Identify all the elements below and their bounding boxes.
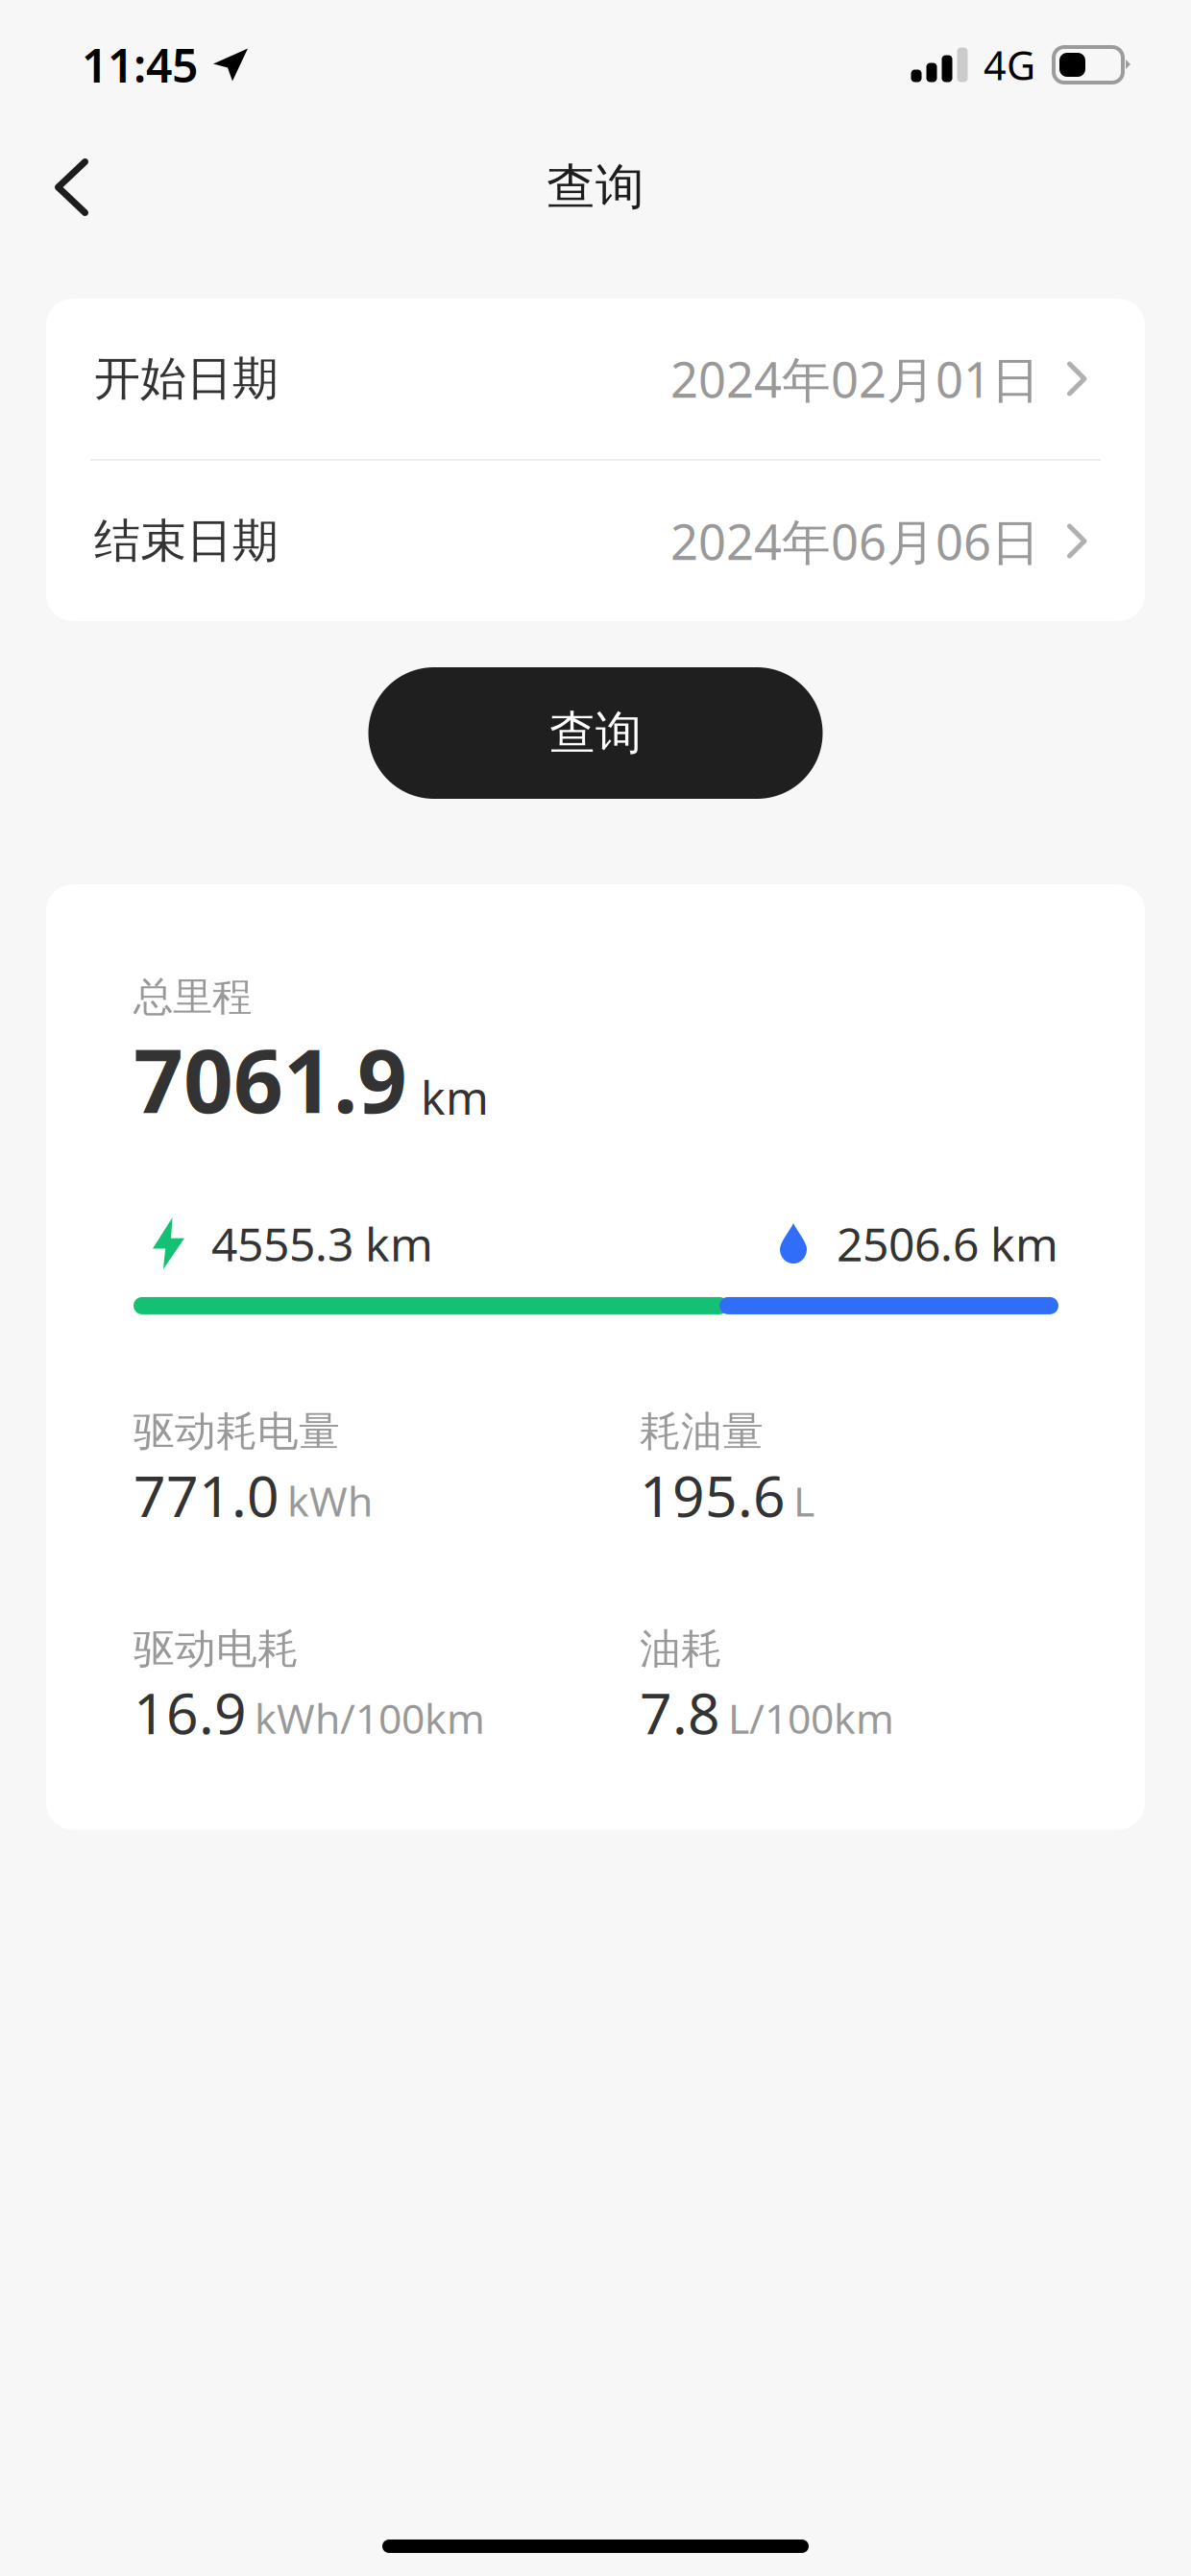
button[interactable]: 开始日期 [46,299,1145,459]
staticText: 结束日期 [94,513,279,569]
button[interactable]: 结束日期 [46,461,1145,621]
staticText: km [421,1066,489,1127]
staticText: kWh/100km [255,1691,485,1745]
staticText: 开始日期 [94,350,279,407]
staticText: 驱动耗电量 [134,1406,340,1457]
staticText: 2024年06月06日 [670,509,1040,573]
staticText: 驱动电耗 [134,1624,299,1674]
staticText: L/100km [728,1691,894,1745]
staticText: 771.0 [134,1458,280,1533]
staticText: 2024年02月01日 [670,347,1040,411]
staticText: 2506.6 km [837,1213,1058,1274]
staticText: L [793,1473,814,1528]
staticText: 4555.3 km [211,1213,433,1274]
staticText: kWh [287,1473,373,1528]
staticText: 7.8 [640,1675,720,1750]
staticText: 油耗 [640,1624,722,1674]
button[interactable]: 查询 [368,667,823,799]
button[interactable]: Back [0,133,127,241]
staticText: 7061.9 [134,1021,407,1137]
staticText: 195.6 [640,1458,786,1533]
staticText: 总里程 [134,973,252,1021]
staticText: 耗油量 [640,1406,764,1457]
staticText: 查询 [549,705,642,761]
staticText: 4G [984,39,1035,91]
staticText: 查询 [547,157,644,217]
staticText: 11:45 [82,34,198,95]
staticText: 16.9 [134,1675,247,1750]
